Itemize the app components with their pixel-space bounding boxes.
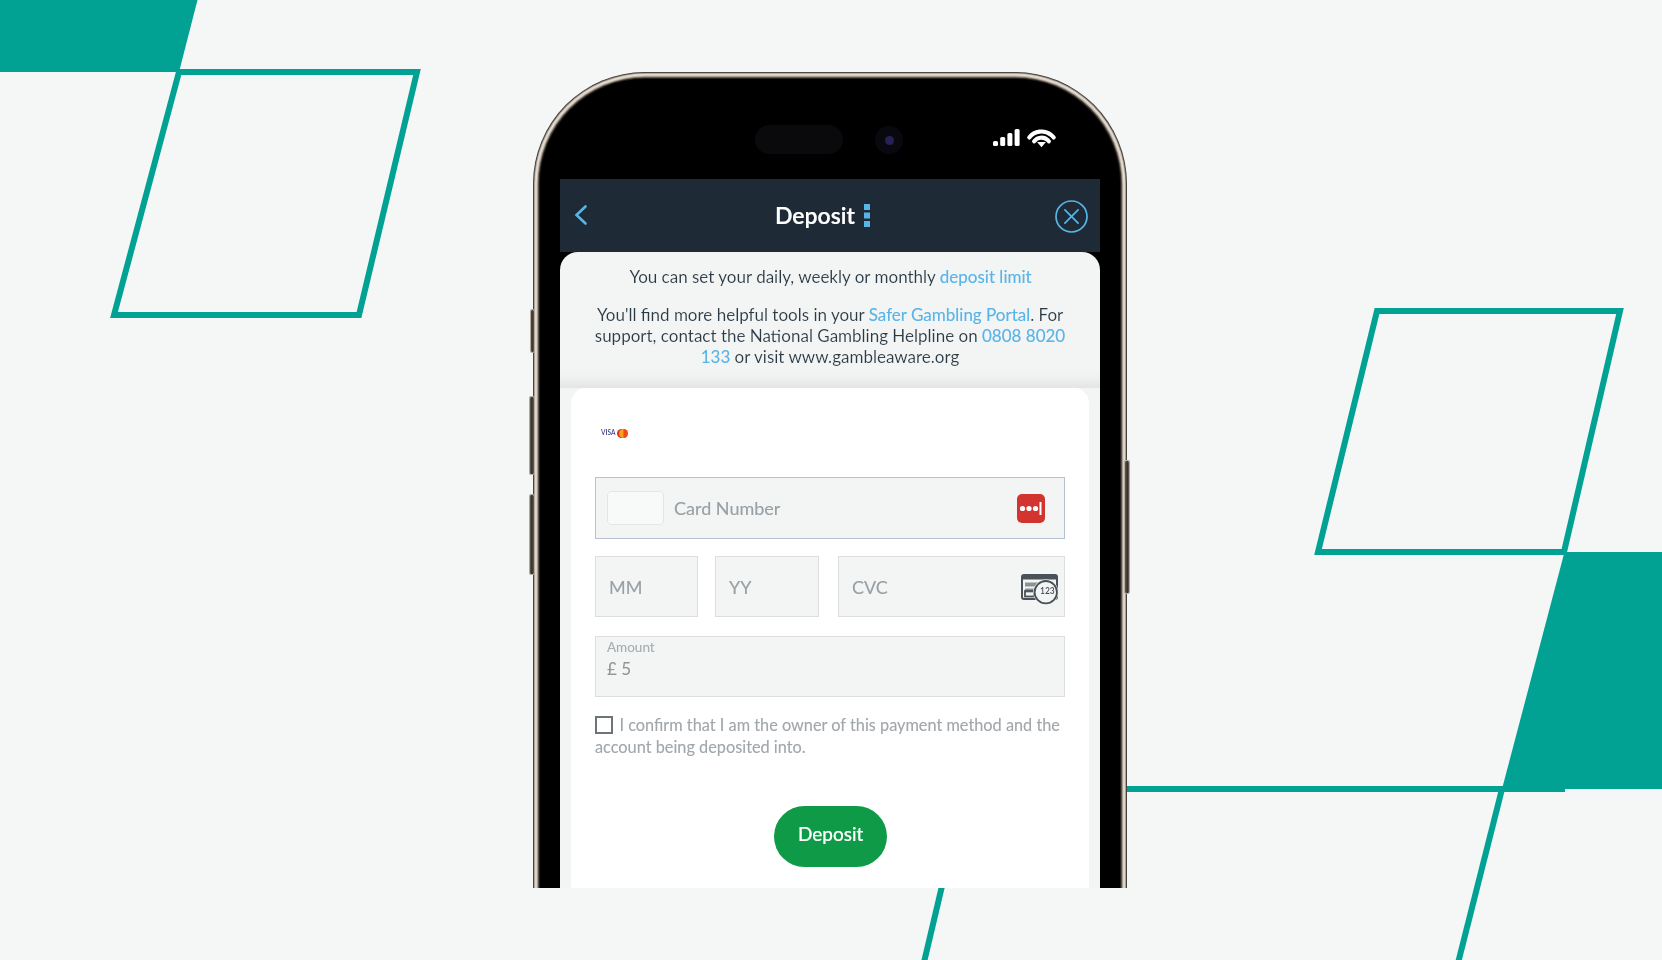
staticText: Card Number xyxy=(674,497,781,519)
button[interactable]: Back xyxy=(558,192,604,238)
staticText: £ 5 xyxy=(607,658,632,678)
button[interactable]: Deposit xyxy=(774,806,887,867)
staticText: Amount xyxy=(607,639,655,655)
staticText: You can set your daily, weekly or monthl… xyxy=(629,266,1032,286)
button[interactable]: CVC xyxy=(838,556,1065,617)
button[interactable]: I confirm that I am the owner of this pa… xyxy=(595,715,1065,757)
button[interactable]: Close xyxy=(1049,194,1093,238)
staticText: YY xyxy=(729,576,752,598)
staticText: You'll find more helpful tools in your S… xyxy=(591,304,1069,367)
staticText: VISA xyxy=(601,429,616,437)
staticText: 123 xyxy=(1040,586,1055,596)
button[interactable]: MM xyxy=(595,556,698,617)
button[interactable]: Card Number xyxy=(595,477,1065,539)
staticText: Deposit xyxy=(798,822,864,845)
button[interactable]: YY xyxy=(715,556,819,617)
staticText: MM xyxy=(609,576,643,598)
staticText: CVC xyxy=(852,576,888,598)
button[interactable]: More options xyxy=(864,204,870,227)
staticText: Deposit xyxy=(775,201,855,229)
staticText: I confirm that I am the owner of this pa… xyxy=(595,715,1065,757)
button[interactable]: Amount xyxy=(595,636,1065,697)
